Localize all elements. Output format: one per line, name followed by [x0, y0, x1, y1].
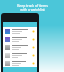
button[interactable]: Add to watchlist: [3, 35, 37, 43]
button[interactable]: Add to watchlist: [32, 30, 35, 33]
button[interactable]: Add to watchlist: [32, 38, 35, 41]
staticText: Keep track of items with a watchlist: [17, 3, 48, 12]
button[interactable]: Add to watchlist: [3, 27, 37, 35]
button[interactable]: Add to watchlist: [32, 46, 35, 49]
button[interactable]: Add to watchlist: [3, 43, 37, 51]
button[interactable]: Add to watchlist: [32, 54, 35, 57]
button[interactable]: Add to watchlist: [3, 51, 37, 59]
button[interactable]: Add to watchlist: [32, 62, 35, 65]
button[interactable]: Add to watchlist: [3, 59, 37, 67]
